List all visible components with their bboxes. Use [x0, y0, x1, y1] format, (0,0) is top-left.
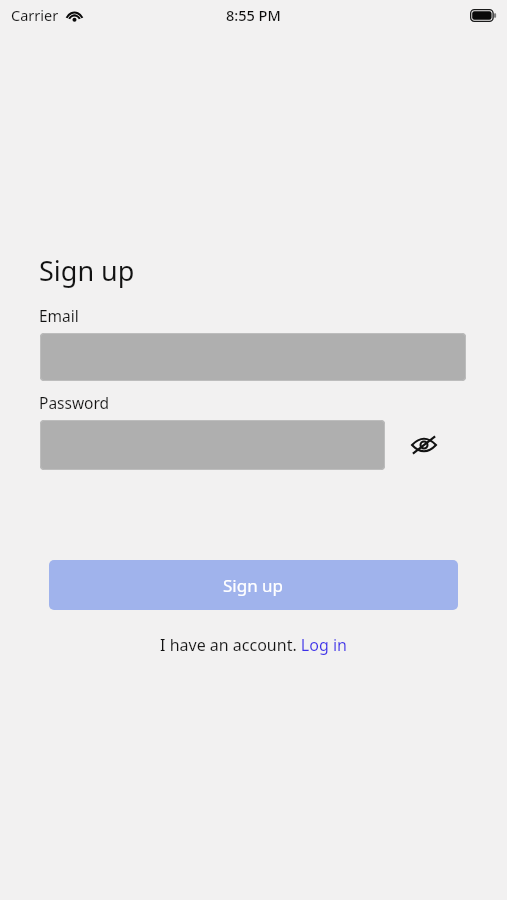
staticText: Carrier [11, 5, 59, 25]
staticText: I have an account. Log in [160, 634, 347, 656]
staticText: 8:55 PM [226, 5, 281, 25]
button[interactable]: Show password [402, 423, 446, 467]
staticText: Password [39, 392, 110, 413]
button[interactable]: I have an account. Log in [154, 631, 353, 659]
staticText: Sign up [223, 574, 284, 597]
staticText: Sign up [39, 252, 135, 289]
staticText: Email [39, 305, 79, 326]
button[interactable] [40, 333, 466, 381]
button[interactable]: Sign up [49, 560, 458, 610]
button[interactable] [40, 420, 385, 470]
